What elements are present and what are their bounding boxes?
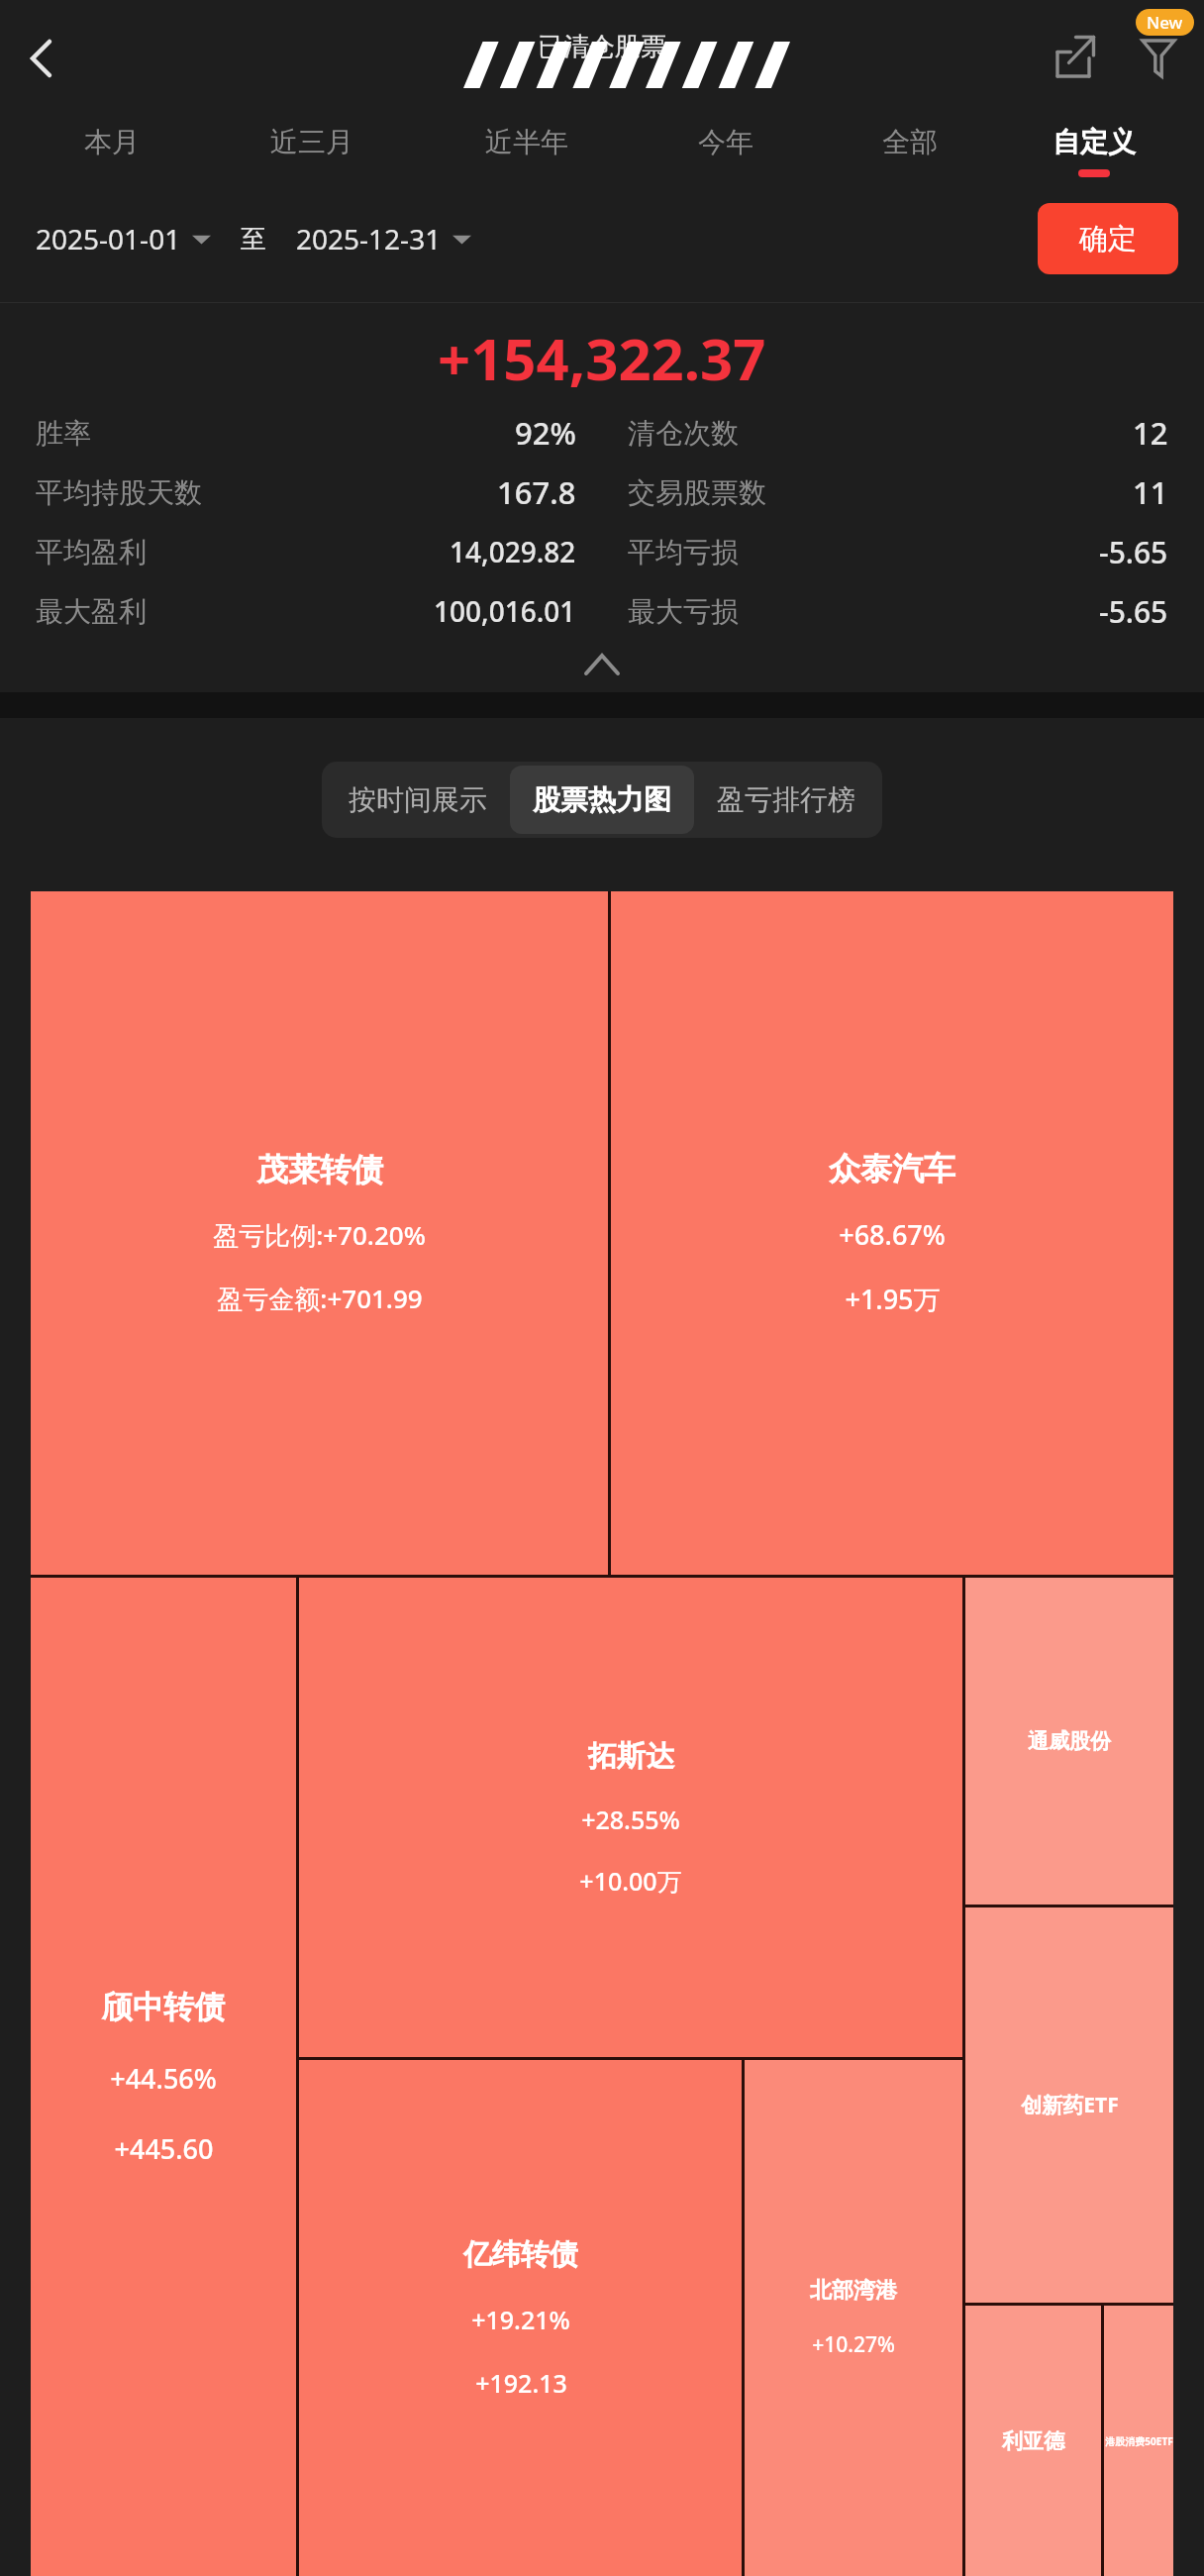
button[interactable]: 今年 xyxy=(634,125,818,169)
button[interactable]: 创新药ETF xyxy=(965,1907,1173,2303)
button[interactable]: 利亚德 xyxy=(965,2306,1101,2576)
staticText: +44.56% xyxy=(110,2060,217,2097)
button[interactable]: 确定 xyxy=(1038,203,1178,274)
button[interactable]: 本月 xyxy=(20,125,204,169)
staticText: +19.21% xyxy=(471,2303,570,2336)
staticText: 自定义 xyxy=(1053,125,1136,159)
staticText: 北部湾港 xyxy=(810,2277,897,2305)
staticText: -5.65 xyxy=(1099,532,1168,572)
button[interactable]: 盈亏排行榜 xyxy=(694,766,878,834)
staticText: 已清仓股票 xyxy=(538,31,666,63)
staticText: 12 xyxy=(1133,412,1168,454)
staticText: 众泰汽车 xyxy=(829,1149,955,1188)
staticText: New xyxy=(1147,11,1183,34)
staticText: +28.55% xyxy=(581,1803,680,1836)
staticText: 交易股票数 xyxy=(628,475,766,510)
staticText: 11 xyxy=(1133,471,1168,513)
button[interactable]: 亿纬转债 xyxy=(299,2060,742,2576)
staticText: +445.60 xyxy=(114,2130,214,2167)
staticText: 通威股份 xyxy=(1028,1728,1111,1754)
staticText: +192.13 xyxy=(475,2366,567,2400)
staticText: 盈亏金额:+701.99 xyxy=(217,1281,423,1316)
button[interactable]: Filter xyxy=(1127,27,1190,90)
staticText: 确定 xyxy=(1079,221,1137,258)
staticText: 最大盈利 xyxy=(36,594,147,629)
staticText: 股票热力图 xyxy=(533,782,671,817)
staticText: 100,016.01 xyxy=(434,592,576,630)
staticText: +10.00万 xyxy=(579,1864,682,1898)
staticText: 全部 xyxy=(882,125,938,159)
button[interactable]: 通威股份 xyxy=(965,1578,1173,1905)
button[interactable]: 全部 xyxy=(818,125,1002,169)
staticText: 盈亏排行榜 xyxy=(717,782,855,817)
staticText: +1.95万 xyxy=(845,1281,941,1317)
staticText: 拓斯达 xyxy=(588,1738,674,1775)
staticText: 颀中转债 xyxy=(102,1988,225,2026)
button[interactable]: Collapse xyxy=(0,637,1204,692)
staticText: 2025-01-01 xyxy=(36,220,181,258)
button[interactable]: 近三月 xyxy=(204,125,419,169)
staticText: 胜率 xyxy=(36,416,91,451)
button[interactable]: 自定义 xyxy=(1002,125,1186,177)
staticText: -5.65 xyxy=(1099,591,1168,632)
staticText: +10.27% xyxy=(812,2330,895,2359)
button[interactable]: Back xyxy=(12,30,69,87)
staticText: 167.8 xyxy=(497,471,576,513)
staticText: 清仓次数 xyxy=(628,416,739,451)
staticText: 2025-12-31 xyxy=(296,220,442,258)
staticText: +154,322.37 xyxy=(438,319,766,397)
staticText: 港股消费50ETF xyxy=(1105,2434,1173,2448)
staticText: 今年 xyxy=(698,125,753,159)
staticText: 亿纬转债 xyxy=(463,2236,578,2273)
staticText: 平均持股天数 xyxy=(36,475,202,510)
staticText: 创新药ETF xyxy=(1021,2091,1119,2119)
button[interactable]: 按时间展示 xyxy=(326,766,510,834)
staticText: 92% xyxy=(515,412,576,454)
button[interactable]: 2025-12-31 xyxy=(296,220,471,258)
staticText: 平均盈利 xyxy=(36,535,147,569)
staticText: 按时间展示 xyxy=(349,782,487,817)
button[interactable]: 拓斯达 xyxy=(299,1578,962,2057)
button[interactable]: 2025-01-01 xyxy=(36,220,211,258)
staticText: 近半年 xyxy=(485,125,568,159)
staticText: 本月 xyxy=(84,125,140,159)
staticText: 利亚德 xyxy=(1002,2428,1064,2454)
staticText: 14,029.82 xyxy=(450,533,576,570)
staticText: 最大亏损 xyxy=(628,594,739,629)
staticText: 盈亏比例:+70.20% xyxy=(213,1217,426,1253)
button[interactable]: 北部湾港 xyxy=(745,2060,962,2576)
staticText: +68.67% xyxy=(839,1216,946,1253)
button[interactable]: 股票热力图 xyxy=(510,766,694,834)
button[interactable]: 众泰汽车 xyxy=(611,891,1173,1575)
button[interactable]: 近半年 xyxy=(419,125,634,169)
staticText: 平均亏损 xyxy=(628,535,739,569)
staticText: 至 xyxy=(241,223,266,256)
button[interactable]: Share xyxy=(1044,27,1107,90)
staticText: 茂莱转债 xyxy=(256,1150,383,1189)
button[interactable]: 港股消费50ETF xyxy=(1104,2306,1173,2576)
staticText: 近三月 xyxy=(270,125,353,159)
button[interactable]: 颀中转债 xyxy=(31,1578,296,2576)
button[interactable]: 茂莱转债 xyxy=(31,891,608,1575)
